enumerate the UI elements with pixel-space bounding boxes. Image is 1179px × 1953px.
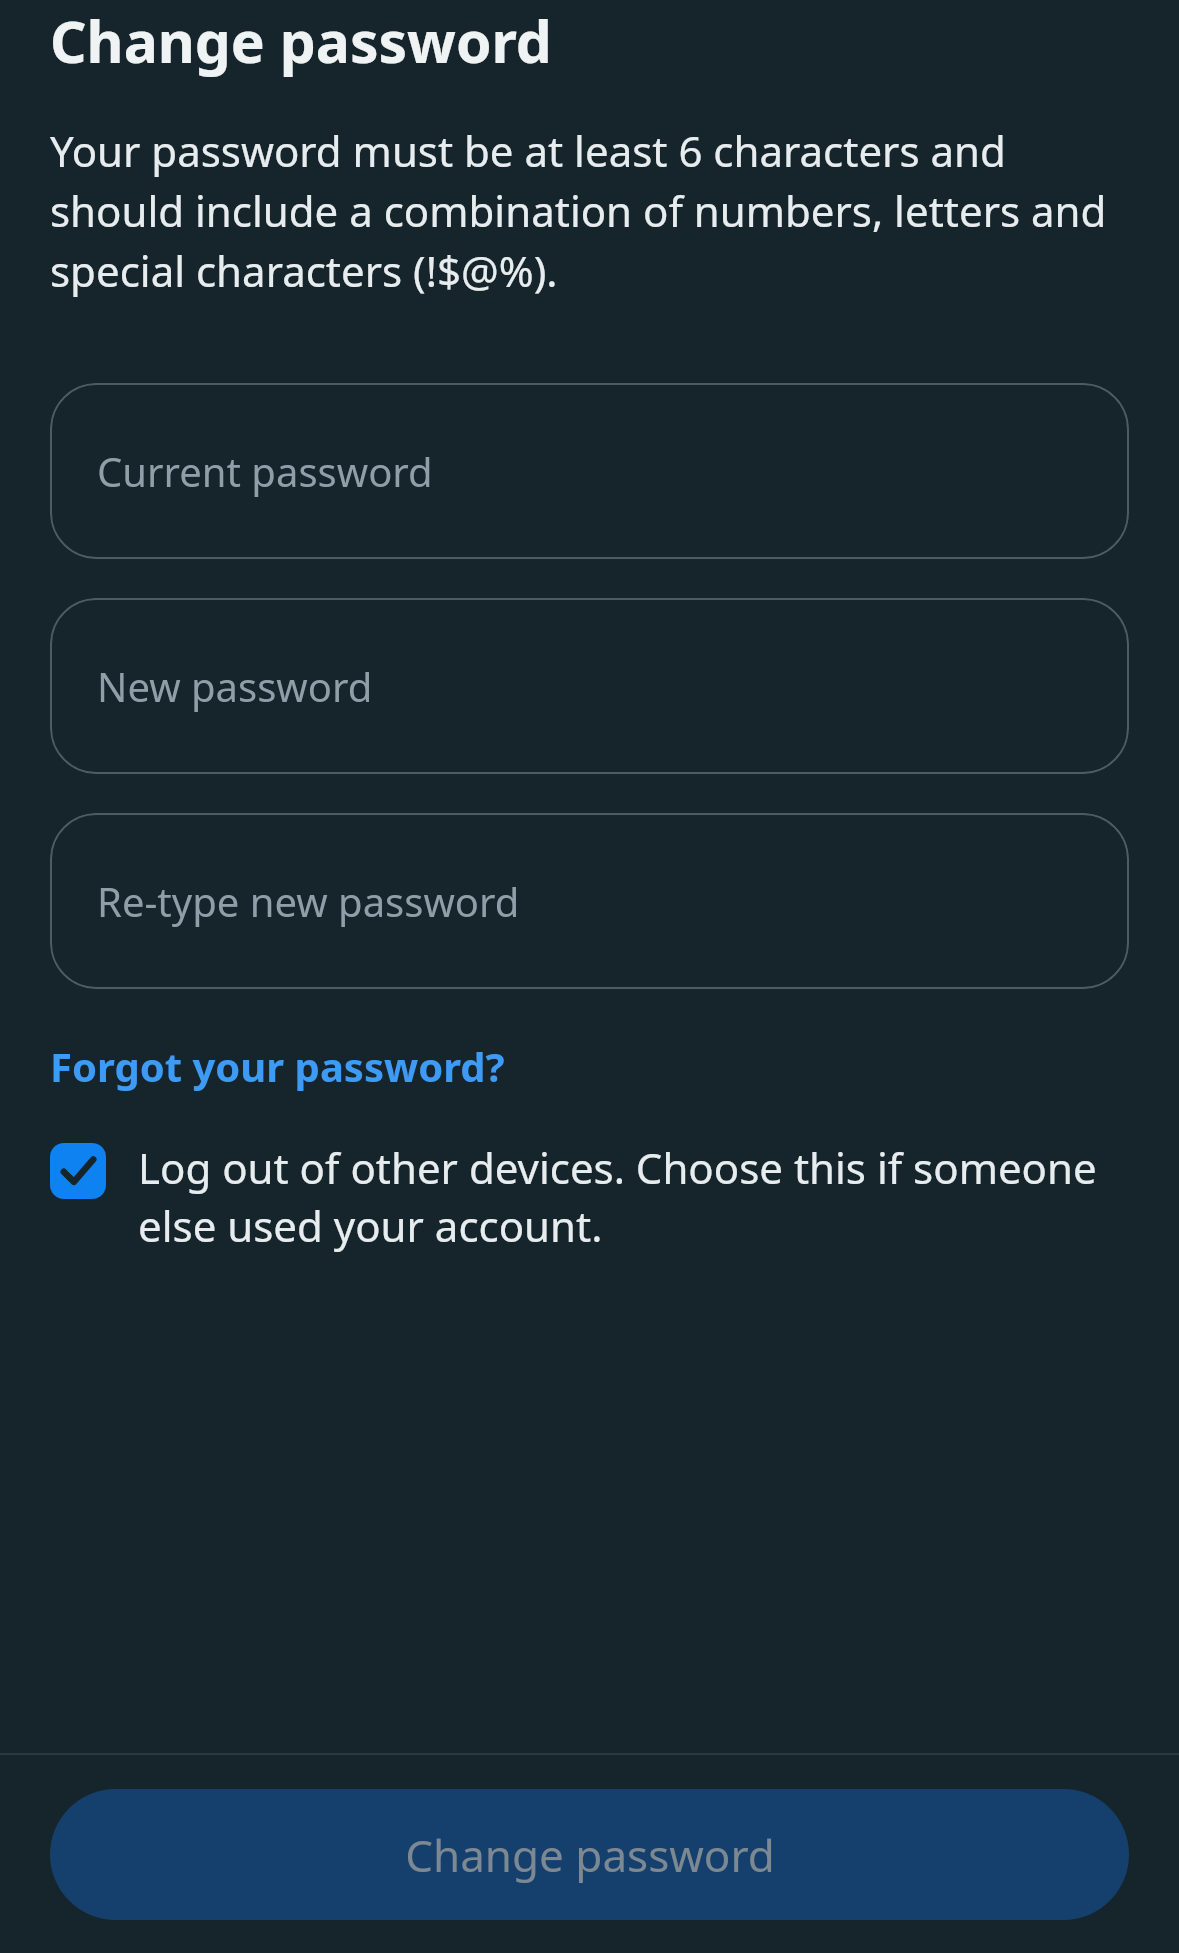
other: Log out of other devices checkbox <box>50 1143 106 1199</box>
staticText: Change password <box>405 1825 775 1885</box>
button[interactable]: Forgot your password? <box>50 1039 505 1093</box>
button[interactable]: Change password <box>50 1789 1129 1920</box>
staticText: Log out of other devices. Choose this if… <box>138 1139 1129 1254</box>
staticText: Your password must be at least 6 charact… <box>50 122 1129 299</box>
button[interactable]: Re-type new password <box>50 813 1129 989</box>
staticText: Forgot your password? <box>50 1039 505 1093</box>
staticText: Re-type new password <box>97 874 520 928</box>
button[interactable]: Log out of other devices checkbox <box>50 1139 1129 1254</box>
button[interactable]: New password <box>50 598 1129 774</box>
staticText: Current password <box>97 444 433 498</box>
staticText: Change password <box>50 2 552 80</box>
button[interactable]: Current password <box>50 383 1129 559</box>
staticText: New password <box>97 659 373 713</box>
